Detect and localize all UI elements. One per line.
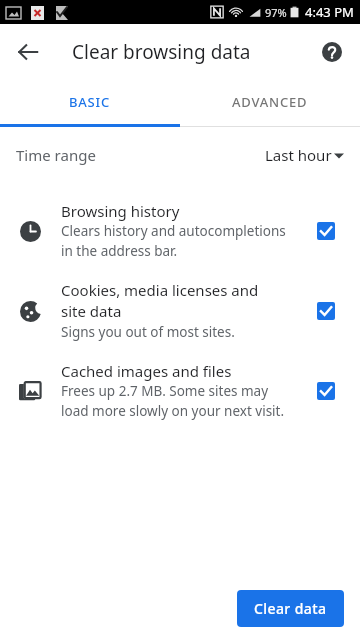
button[interactable]: Cached images and files [0,351,360,430]
staticText: BASIC [69,93,111,111]
button[interactable]: Clear data [237,590,344,627]
staticText: Last hour [265,145,332,165]
staticText: Cookies, media licenses and site data [61,280,259,322]
staticText: Signs you out of most sites. [61,323,235,341]
staticText: 4:43 PM [305,3,354,21]
button[interactable]: BASIC [0,80,180,124]
button[interactable]: Toggle Cached images and files [306,371,346,411]
staticText: Browsing history [61,201,180,221]
button[interactable]: ADVANCED [180,80,360,124]
button[interactable]: Cookies, media licenses and site data [0,270,360,351]
button[interactable]: Toggle Browsing history [306,211,346,251]
staticText: Cached images and files [61,361,232,381]
button[interactable]: Back [6,30,50,74]
staticText: ADVANCED [232,93,308,111]
staticText: Time range [16,145,96,165]
staticText: Clear browsing data [72,39,251,65]
staticText: Clears history and autocompletions in th… [61,222,286,260]
button[interactable]: Browsing history [0,191,360,270]
staticText: Frees up 2.7 MB. Some sites may load mor… [61,382,285,420]
button[interactable]: Time range [0,127,360,183]
staticText: Clear data [254,599,327,618]
button[interactable]: Toggle Cookies, media licenses and site … [306,291,346,331]
button[interactable]: Help [310,30,354,74]
staticText: 97% [265,5,287,20]
